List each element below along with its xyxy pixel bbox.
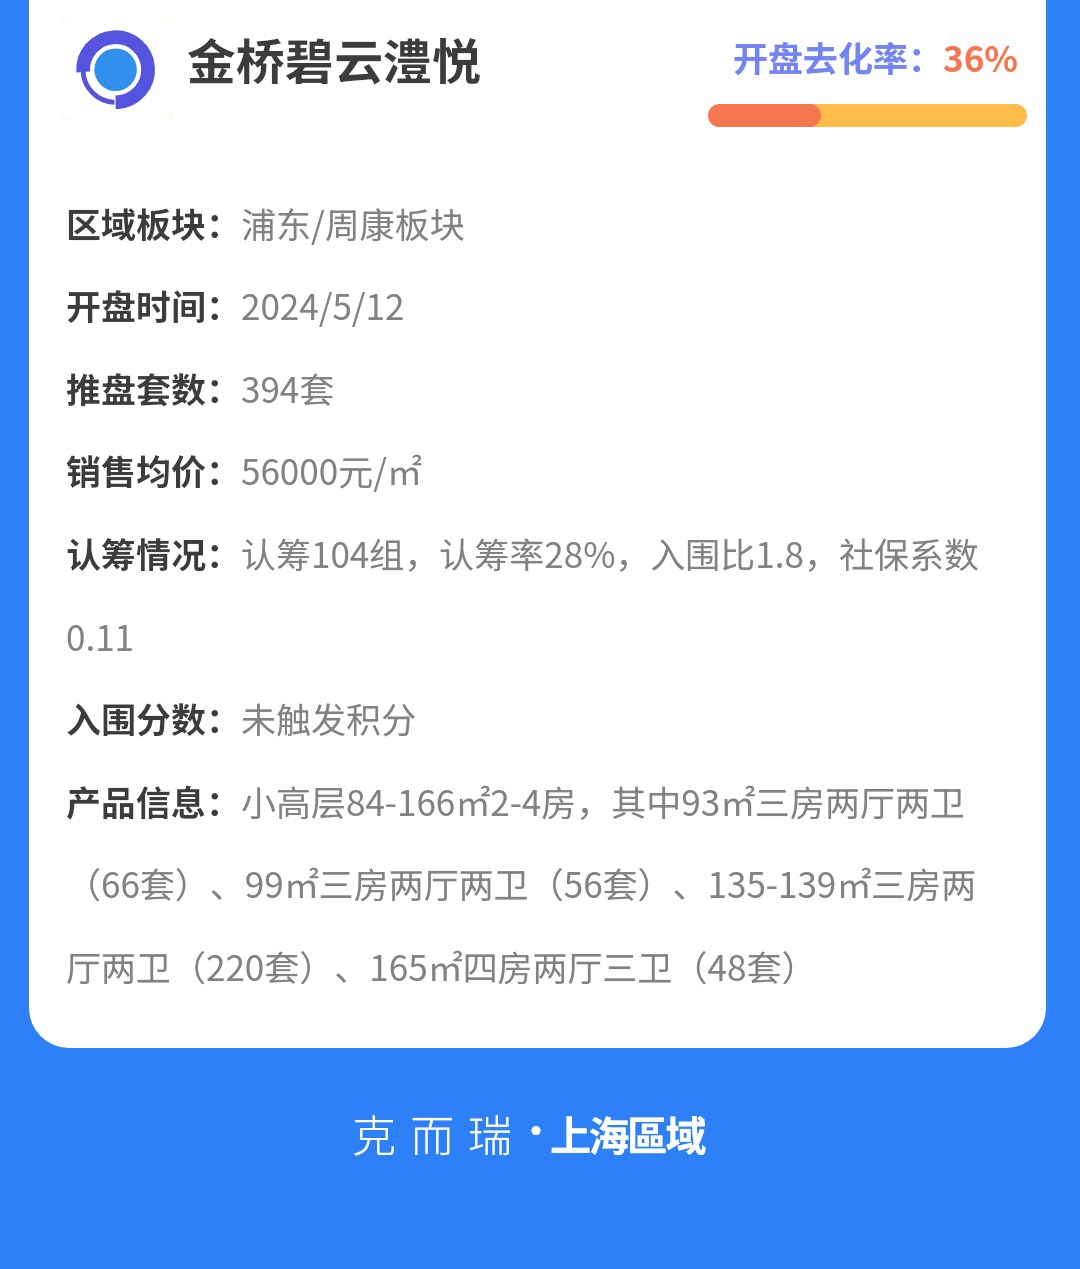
button[interactable]: 项目标识 — [45, 0, 185, 140]
staticText: 上海區域 — [550, 1103, 704, 1162]
button[interactable]: 推盘套数：394套 — [66, 350, 1006, 408]
staticText: 区域板块：浦东/周康板块 — [66, 197, 465, 248]
button[interactable]: 认筹情况：认筹104组，认筹率28%，入围比1.8，社保系数 — [66, 515, 1006, 573]
staticText: 开盘时间：2024/5/12 — [66, 279, 405, 330]
staticText: 厅两卫（220套）、165㎡四房两厅三卫（48套） — [66, 940, 817, 991]
staticText: 金桥碧云澧悦 — [187, 23, 482, 94]
button[interactable]: 0.11 — [66, 598, 1006, 656]
button[interactable]: 入围分数：未触发积分 — [66, 680, 1006, 738]
button[interactable]: 区域板块：浦东/周康板块 — [66, 185, 1006, 243]
staticText: 0.11 — [66, 610, 135, 661]
button[interactable]: （66套）、99㎡三房两厅两卫（56套）、135-139㎡三房两 — [66, 845, 1006, 903]
button[interactable]: 厅两卫（220套）、165㎡四房两厅三卫（48套） — [66, 928, 1006, 986]
staticText: 入围分数：未触发积分 — [66, 692, 417, 743]
staticText: 销售均价：56000元/㎡ — [66, 444, 422, 495]
staticText: · — [519, 1105, 553, 1154]
button[interactable]: 产品信息：小高层84-166㎡2-4房，其中93㎡三房两厅两卫 — [66, 763, 1006, 821]
staticText: 推盘套数：394套 — [66, 362, 335, 413]
button[interactable]: 开盘去化率进度 36% — [708, 104, 1027, 127]
staticText: 开盘去化率：36% — [733, 31, 1019, 82]
button[interactable]: 销售均价：56000元/㎡ — [66, 432, 1006, 490]
staticText: 认筹情况：认筹104组，认筹率28%，入围比1.8，社保系数 — [66, 527, 979, 578]
staticText: （66套）、99㎡三房两厅两卫（56套）、135-139㎡三房两 — [66, 857, 977, 908]
button[interactable]: 克而瑞 — [340, 1094, 740, 1158]
staticText: 产品信息：小高层84-166㎡2-4房，其中93㎡三房两厅两卫 — [66, 775, 966, 826]
button[interactable]: 开盘时间：2024/5/12 — [66, 267, 1006, 325]
staticText: 克而瑞 — [352, 1101, 526, 1165]
button[interactable]: 金桥碧云澧悦 — [179, 14, 499, 86]
